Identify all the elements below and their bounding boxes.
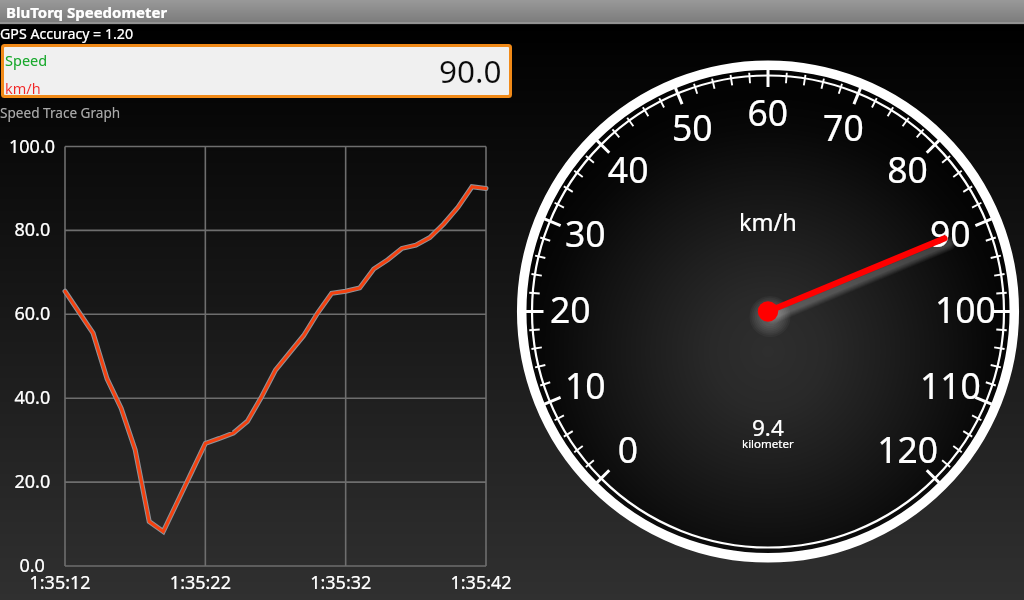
staticText: BluTorq Speedometer bbox=[6, 2, 168, 22]
button[interactable]: Speed bbox=[4, 47, 509, 95]
staticText: km/h bbox=[5, 78, 41, 95]
staticText: Speed Trace Graph bbox=[0, 103, 121, 122]
staticText: GPS Accuracy = 1.20 bbox=[0, 24, 134, 43]
staticText: Speed bbox=[5, 50, 48, 70]
staticText: 90.0 bbox=[439, 49, 502, 92]
